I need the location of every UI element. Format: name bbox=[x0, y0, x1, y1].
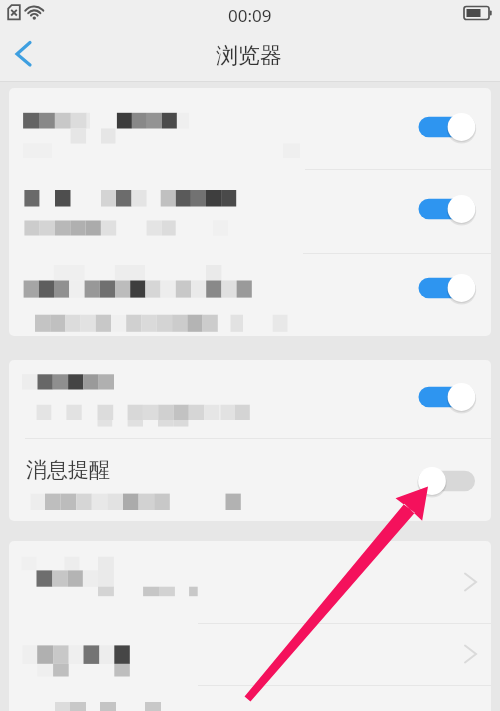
button[interactable] bbox=[9, 88, 491, 169]
button[interactable] bbox=[9, 438, 491, 520]
button[interactable] bbox=[9, 685, 491, 711]
button[interactable]: Setting 2 bbox=[413, 189, 481, 229]
button[interactable]: Setting 4 bbox=[413, 377, 481, 417]
button[interactable]: Back bbox=[2, 32, 48, 76]
button[interactable]: 消息提醒 bbox=[413, 461, 481, 501]
button[interactable] bbox=[9, 623, 491, 686]
button[interactable] bbox=[9, 541, 491, 623]
button[interactable]: Setting 1 bbox=[413, 107, 481, 147]
button[interactable]: Setting 3 bbox=[413, 268, 481, 308]
staticText: 消息提醒 bbox=[26, 457, 110, 483]
button[interactable] bbox=[9, 253, 491, 336]
button[interactable] bbox=[9, 169, 491, 254]
staticText: 00:09 bbox=[228, 4, 272, 27]
staticText: 浏览器 bbox=[216, 42, 282, 70]
button[interactable] bbox=[9, 360, 491, 439]
